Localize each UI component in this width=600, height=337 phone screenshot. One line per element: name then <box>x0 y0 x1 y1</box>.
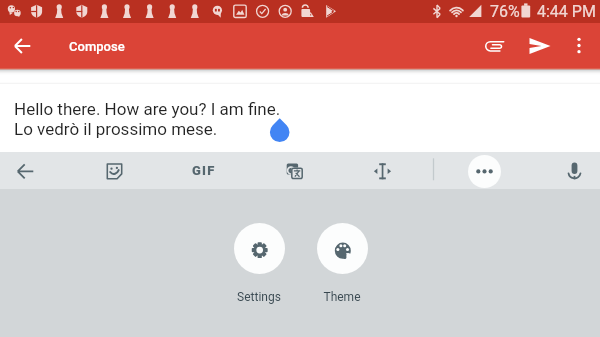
staticText: GIF <box>192 163 216 178</box>
staticText: Compose <box>69 39 125 54</box>
button[interactable]: Voice input <box>556 152 593 189</box>
staticText: Settings <box>237 290 281 304</box>
button[interactable]: More options <box>561 27 597 63</box>
staticText: Hello there. How are you? I am fine. <box>14 99 281 119</box>
staticText: Lo vedrò il prossimo mese. <box>14 119 218 139</box>
button[interactable]: More keyboard options <box>468 155 501 188</box>
button[interactable]: Attach file <box>477 27 513 63</box>
button[interactable]: Stickers <box>96 152 133 189</box>
button[interactable]: Send <box>522 27 558 63</box>
button[interactable]: Translate <box>276 152 313 189</box>
staticText: Theme <box>323 290 361 304</box>
staticText: 4:44 PM <box>537 2 596 21</box>
button[interactable]: GIF <box>184 152 222 189</box>
staticText: 76% <box>490 2 520 21</box>
button[interactable]: Navigate up <box>4 28 40 64</box>
button[interactable]: Back <box>7 152 44 189</box>
button[interactable]: Theme <box>297 223 387 304</box>
button[interactable]: Move cursor <box>364 152 401 189</box>
button[interactable]: Settings <box>214 223 304 304</box>
